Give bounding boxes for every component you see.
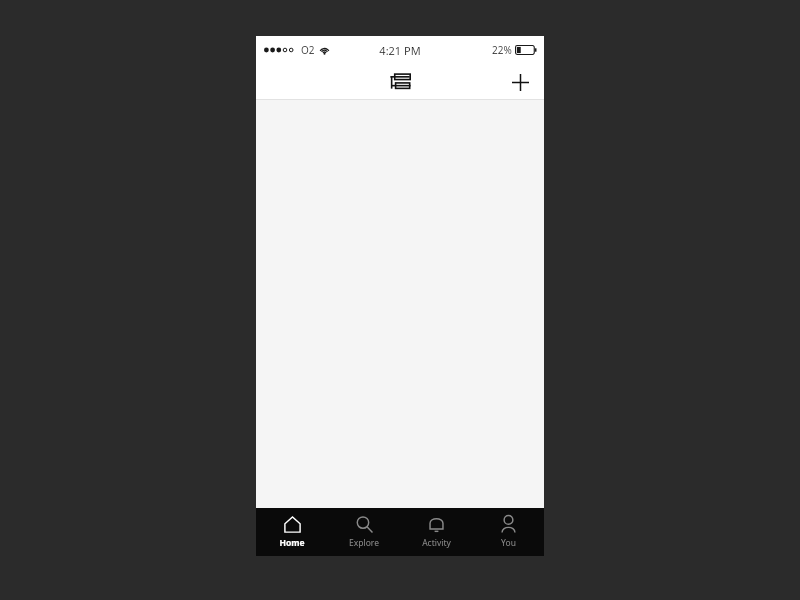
button[interactable]: You (472, 508, 544, 556)
staticText: Home (279, 537, 305, 549)
button[interactable]: Explore (328, 508, 400, 556)
staticText: You (501, 537, 516, 549)
staticText: Activity (422, 537, 451, 549)
staticText: 22% (492, 43, 512, 57)
button[interactable]: Brand logo (383, 65, 417, 99)
button[interactable]: Activity (400, 508, 472, 556)
staticText: 4:21 PM (379, 43, 421, 58)
staticText: Explore (349, 537, 379, 549)
button[interactable]: Add (504, 66, 536, 98)
button[interactable]: Home (256, 508, 328, 556)
staticText: O2 (301, 43, 315, 57)
